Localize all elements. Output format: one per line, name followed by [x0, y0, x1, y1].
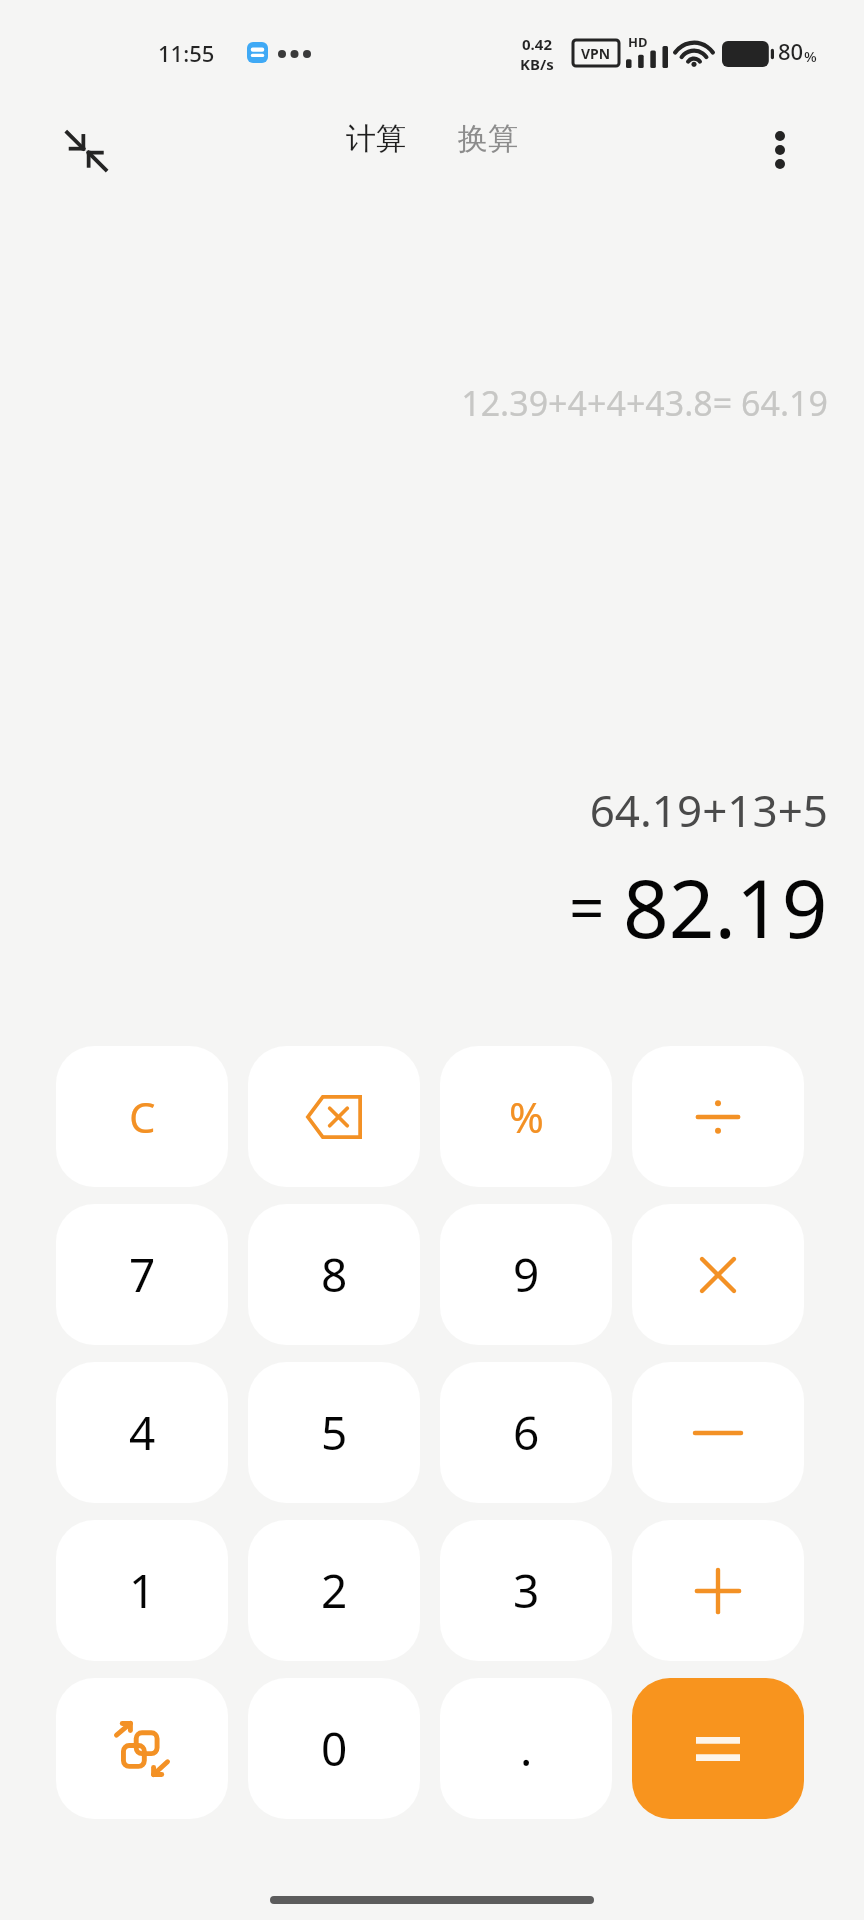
button[interactable]: Scientific mode [56, 1678, 228, 1819]
button[interactable]: Collapse [46, 110, 126, 190]
button[interactable]: 8 [248, 1204, 420, 1345]
staticText: 0.42 [522, 34, 552, 54]
staticText: 8 [321, 1243, 348, 1306]
staticText: 3 [513, 1559, 540, 1622]
button[interactable]: 计算 [332, 112, 420, 166]
button[interactable]: Plus [632, 1520, 804, 1661]
staticText: 计算 [346, 120, 406, 158]
staticText: HD [628, 33, 648, 51]
staticText: . [520, 1717, 533, 1780]
staticText: = [569, 865, 605, 949]
staticText: 换算 [458, 120, 518, 158]
staticText: 5 [321, 1401, 348, 1464]
button[interactable]: 7 [56, 1204, 228, 1345]
button[interactable]: 0 [248, 1678, 420, 1819]
staticText: VPN [581, 44, 611, 63]
button[interactable]: 12.39+4+4+43.8= 64.19 [0, 380, 828, 426]
staticText: 12.39+4+4+43.8= 64.19 [461, 380, 828, 426]
staticText: % [804, 46, 817, 66]
staticText: 2 [321, 1559, 348, 1622]
button[interactable]: 1 [56, 1520, 228, 1661]
staticText: 80 [778, 36, 804, 66]
button[interactable]: Multiply [632, 1204, 804, 1345]
staticText: KB/s [520, 54, 554, 74]
staticText: 1 [129, 1559, 156, 1622]
button[interactable]: 9 [440, 1204, 612, 1345]
staticText: 64.19+13+5 [589, 780, 828, 840]
staticText: 0 [321, 1717, 348, 1780]
button[interactable]: Clear [56, 1046, 228, 1187]
button[interactable]: Backspace [248, 1046, 420, 1187]
staticText: 6 [513, 1401, 540, 1464]
staticText: 11:55 [158, 38, 215, 68]
button[interactable]: Divide [632, 1046, 804, 1187]
staticText: 7 [129, 1243, 156, 1306]
staticText: % [509, 1088, 544, 1145]
button[interactable]: More options [740, 110, 820, 190]
button[interactable]: . [440, 1678, 612, 1819]
staticText: C [129, 1088, 156, 1145]
staticText: 9 [513, 1243, 540, 1306]
button[interactable]: 2 [248, 1520, 420, 1661]
button[interactable]: Percent [440, 1046, 612, 1187]
button[interactable]: Minus [632, 1362, 804, 1503]
staticText: 4 [129, 1401, 156, 1464]
button[interactable]: 4 [56, 1362, 228, 1503]
button[interactable]: Equals [632, 1678, 804, 1819]
staticText: 82.19 [623, 852, 828, 961]
button[interactable]: 5 [248, 1362, 420, 1503]
button[interactable]: 3 [440, 1520, 612, 1661]
button[interactable]: 换算 [444, 112, 532, 166]
button[interactable]: 6 [440, 1362, 612, 1503]
